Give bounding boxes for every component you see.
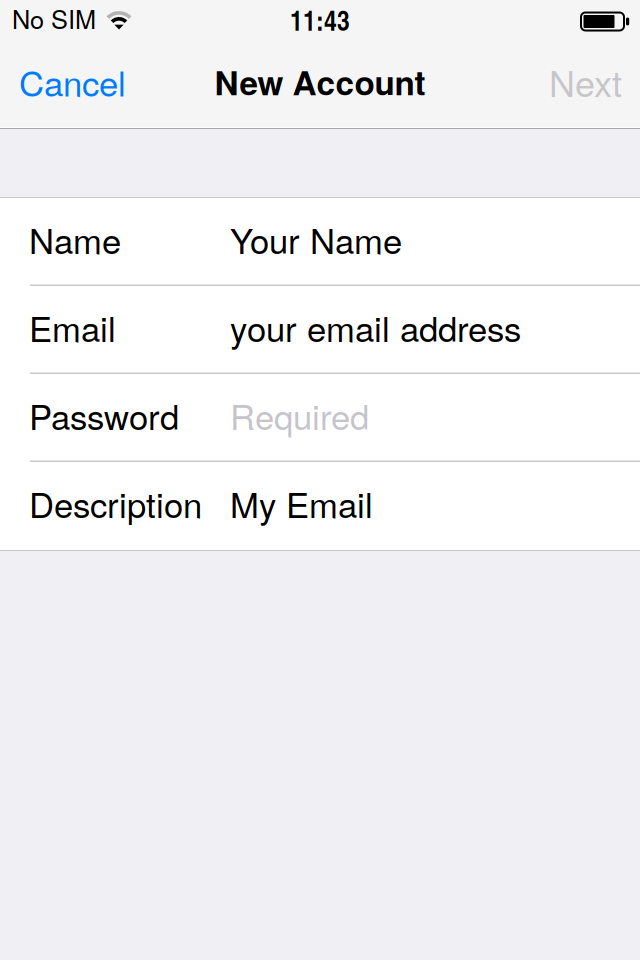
staticText: Name	[29, 214, 121, 264]
staticText: Cancel	[19, 57, 126, 106]
staticText: My Email	[230, 478, 373, 528]
button[interactable]: Password	[0, 374, 640, 462]
staticText: Required	[230, 390, 369, 440]
staticText: Your Name	[230, 214, 402, 264]
button[interactable]: Name	[0, 198, 640, 286]
staticText: Description	[29, 478, 202, 528]
button[interactable]: Next	[533, 40, 640, 129]
staticText: Email	[29, 302, 116, 352]
staticText: New Account	[214, 58, 425, 105]
staticText: 11:43	[290, 0, 350, 39]
staticText: your email address	[230, 302, 521, 352]
staticText: Next	[549, 56, 622, 107]
button[interactable]: Cancel	[0, 40, 142, 129]
staticText: Password	[29, 390, 179, 440]
staticText: No SIM	[12, 0, 96, 36]
button[interactable]: Description	[0, 462, 640, 550]
button[interactable]: Email	[0, 286, 640, 374]
